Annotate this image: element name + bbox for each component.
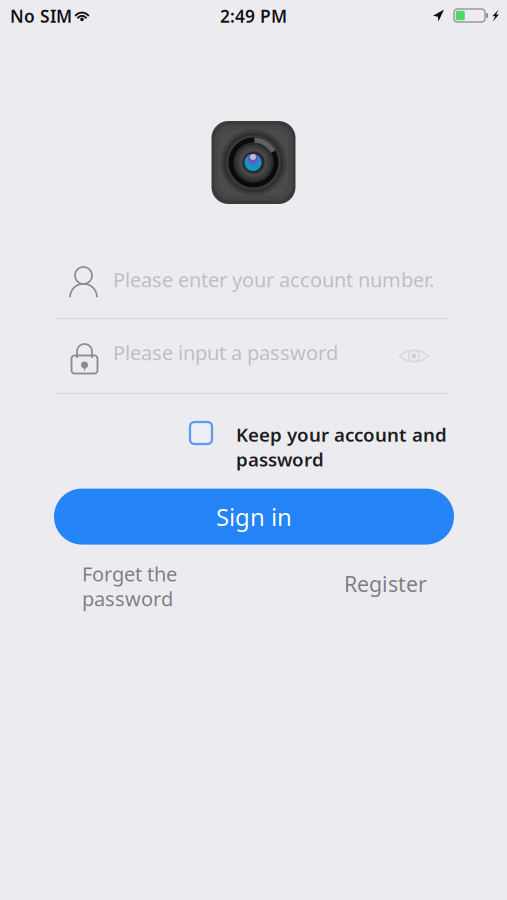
staticText: Forget the	[82, 561, 177, 587]
staticText: Keep your account and password	[236, 422, 447, 472]
staticText: No SIM	[10, 4, 72, 27]
staticText: 2:49 PM	[220, 4, 287, 27]
button[interactable]: Register	[344, 570, 427, 598]
staticText: Sign in	[216, 501, 292, 532]
staticText: Register	[344, 570, 427, 598]
staticText: Please enter your account number.	[113, 266, 434, 293]
button[interactable]: Forget the	[82, 561, 182, 612]
button[interactable]: Keep your account and password	[190, 422, 448, 472]
staticText: Please input a password	[113, 339, 338, 366]
button[interactable]: Sign in	[54, 489, 454, 545]
button[interactable]: Show password	[392, 341, 436, 381]
staticText: password	[82, 585, 173, 612]
